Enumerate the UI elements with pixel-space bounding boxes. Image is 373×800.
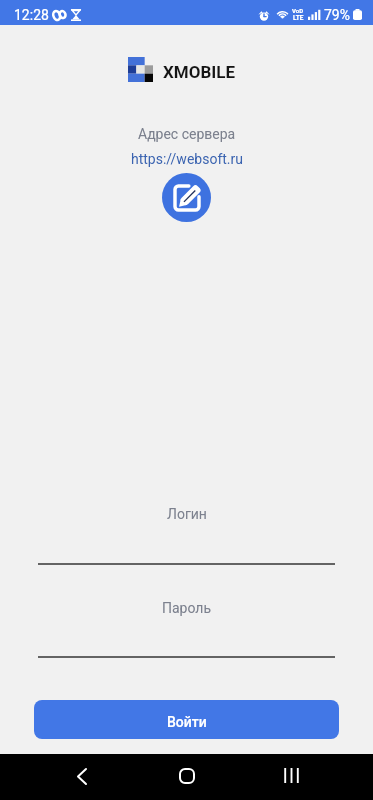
button[interactable]: Back <box>59 754 105 800</box>
staticText: 12:28 <box>14 7 49 23</box>
staticText: https://websoft.ru <box>131 151 243 167</box>
staticText: Адрес сервера <box>138 126 236 142</box>
button[interactable]: Войти <box>34 700 339 739</box>
staticText: XMOBILE <box>163 62 235 82</box>
staticText: LTE <box>293 14 304 22</box>
staticText: Пароль <box>162 600 212 616</box>
staticText: Войти <box>167 714 207 730</box>
button[interactable]: Recent apps <box>268 754 314 800</box>
staticText: Логин <box>167 506 207 522</box>
staticText: VoD <box>292 7 304 14</box>
button[interactable]: Home <box>164 754 210 800</box>
button[interactable]: Изменить адрес сервера <box>162 173 211 222</box>
staticText: 79% <box>324 7 350 23</box>
